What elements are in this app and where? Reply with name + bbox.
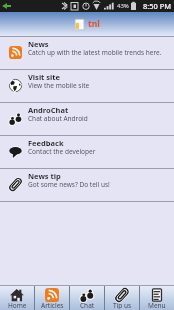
button[interactable]: News tip xyxy=(0,169,174,202)
button[interactable]: Visit site xyxy=(0,70,174,103)
staticText: Contact the developer xyxy=(28,147,96,156)
staticText: News tip xyxy=(28,171,61,181)
staticText: tnl xyxy=(88,18,100,30)
staticText: 43% xyxy=(117,2,129,10)
button[interactable]: Home xyxy=(0,285,34,310)
button[interactable]: Tip us xyxy=(105,285,139,310)
staticText: Chat about Android xyxy=(28,114,88,123)
staticText: Feedback xyxy=(28,138,64,148)
staticText: View the mobile site xyxy=(28,81,90,90)
staticText: Articles xyxy=(41,301,64,309)
button[interactable]: News xyxy=(0,37,174,70)
staticText: Chat xyxy=(80,301,95,309)
staticText: Got some news? Do tell us! xyxy=(28,180,110,189)
staticText: 8:50 PM xyxy=(143,1,172,11)
button[interactable]: Articles xyxy=(35,285,69,310)
staticText: AndroChat xyxy=(28,105,69,115)
button[interactable]: Feedback xyxy=(0,136,174,169)
staticText: Home xyxy=(8,301,27,309)
staticText: Tip us xyxy=(113,301,132,309)
staticText: Menu xyxy=(148,301,166,309)
button[interactable]: Menu xyxy=(140,285,174,310)
button[interactable]: Chat xyxy=(70,285,104,310)
button[interactable]: AndroChat xyxy=(0,103,174,136)
staticText: Visit site xyxy=(28,72,61,82)
staticText: Catch up with the latest mobile trends h… xyxy=(28,48,162,57)
staticText: News xyxy=(28,39,49,49)
